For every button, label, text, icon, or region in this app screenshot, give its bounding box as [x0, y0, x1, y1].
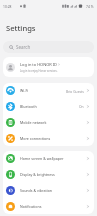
other: Open — [86, 104, 90, 109]
other: Open — [86, 156, 90, 161]
button[interactable]: More connections — [3, 130, 94, 146]
other: Open — [86, 136, 90, 141]
button[interactable]: Display & brightness — [3, 166, 94, 182]
staticText: Log in to enjoy Honor services. — [20, 69, 58, 73]
staticText: Wi-Fi — [20, 88, 29, 93]
other: Open — [86, 172, 90, 177]
button[interactable]: Sounds & vibration — [3, 182, 94, 198]
staticText: Mobile network — [20, 120, 47, 125]
staticText: Sounds & vibration — [20, 188, 53, 193]
other: Open — [86, 88, 90, 93]
staticText: Display & brightness — [20, 172, 55, 177]
button[interactable]: Notifications — [3, 198, 94, 214]
staticText: 10:28 — [3, 4, 12, 8]
staticText: More connections — [20, 136, 51, 141]
button[interactable]: Mobile network — [3, 114, 94, 130]
other: Open — [86, 188, 90, 193]
staticText: Brio Guests — [66, 89, 84, 93]
staticText: On — [79, 104, 84, 108]
button[interactable]: Log in to HONOR ID — [3, 57, 94, 77]
button[interactable]: Wi-Fi — [3, 83, 94, 98]
staticText: Log in to HONOR ID — [20, 62, 57, 67]
staticText: Search — [16, 44, 31, 50]
staticText: 74 % — [86, 4, 94, 8]
staticText: Settings — [6, 23, 36, 33]
staticText: Bluetooth — [20, 104, 37, 109]
button[interactable]: Home screen & wallpaper — [3, 151, 94, 166]
button[interactable]: Bluetooth — [3, 98, 94, 114]
other: Open — [86, 120, 90, 125]
staticText: Home screen & wallpaper — [20, 156, 64, 161]
staticText: Notifications — [20, 204, 42, 209]
other: Open — [86, 204, 90, 209]
button[interactable]: Search — [3, 41, 94, 53]
